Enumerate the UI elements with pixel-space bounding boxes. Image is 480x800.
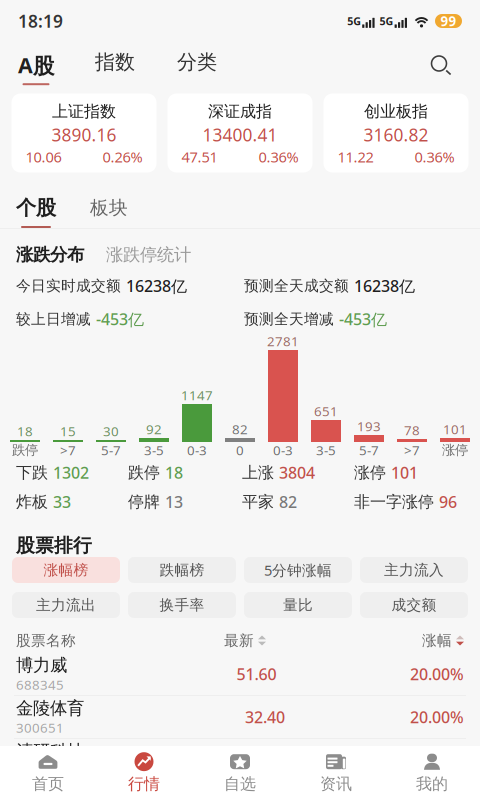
button[interactable]: 我的: [384, 746, 480, 800]
button[interactable]: 深证成指: [167, 93, 312, 172]
staticText: 47.51: [181, 147, 217, 167]
button[interactable]: 行情: [96, 746, 192, 800]
button[interactable]: 量比: [244, 592, 352, 618]
staticText: >7: [404, 441, 420, 459]
button[interactable]: A股: [0, 47, 73, 85]
staticText: 688345: [16, 676, 64, 693]
staticText: 20.00%: [410, 706, 464, 728]
button[interactable]: 主力流入: [360, 557, 468, 583]
staticText: 32.40: [245, 706, 285, 728]
button[interactable]: 跌幅榜: [128, 557, 236, 583]
staticText: 15: [60, 422, 76, 440]
staticText: 深证成指: [208, 101, 272, 121]
staticText: 量比: [283, 596, 313, 614]
staticText: 成交额: [391, 596, 436, 614]
staticText: 5-7: [101, 441, 121, 459]
staticText: -453亿: [96, 308, 144, 330]
staticText: 涨跌分布: [16, 244, 84, 265]
staticText: 300651: [16, 762, 64, 779]
staticText: 0.36%: [258, 147, 298, 167]
staticText: 10.06: [25, 147, 61, 167]
button[interactable]: 博力威: [0, 653, 480, 695]
staticText: 13: [165, 491, 183, 512]
staticText: 0.36%: [414, 147, 454, 167]
button[interactable]: 金陵体育: [0, 696, 480, 738]
staticText: 5G: [380, 14, 394, 28]
staticText: 涨停: [354, 463, 386, 482]
staticText: 0-3: [187, 441, 207, 459]
staticText: 5分钟涨幅: [264, 560, 332, 580]
staticText: 个股: [16, 195, 56, 220]
button[interactable]: 换手率: [128, 592, 236, 618]
button[interactable]: 涨跌分布: [16, 244, 84, 265]
staticText: 行情: [128, 774, 160, 794]
staticText: 78: [404, 421, 420, 439]
staticText: 82: [232, 420, 248, 438]
button[interactable]: 指数: [73, 50, 155, 82]
staticText: 300651: [16, 719, 64, 736]
staticText: 跌停: [12, 442, 38, 458]
staticText: 下跌: [16, 463, 48, 482]
staticText: 股票排行: [16, 534, 92, 557]
staticText: 51.60: [236, 663, 276, 685]
button[interactable]: 成交额: [360, 592, 468, 618]
staticText: 停牌: [128, 492, 160, 512]
staticText: 33: [53, 491, 71, 512]
button[interactable]: 涨幅: [404, 631, 464, 649]
button[interactable]: 清研科技: [0, 739, 480, 781]
button[interactable]: 涨跌停统计: [84, 244, 191, 265]
button[interactable]: 自选: [192, 746, 288, 800]
button[interactable]: 主力流出: [12, 592, 120, 618]
staticText: -453亿: [339, 308, 387, 330]
staticText: 涨幅榜: [43, 561, 88, 579]
staticText: 非一字涨停: [354, 492, 434, 512]
staticText: 193: [357, 417, 381, 435]
staticText: 涨停: [442, 442, 468, 458]
staticText: 主力流出: [36, 596, 96, 614]
staticText: A股: [18, 51, 54, 79]
staticText: 16238亿: [354, 275, 415, 296]
staticText: 博力威: [16, 654, 67, 676]
button[interactable]: 最新: [224, 631, 336, 649]
staticText: 0-3: [273, 441, 293, 459]
button[interactable]: 上证指数: [11, 93, 156, 172]
staticText: 2781: [267, 332, 299, 350]
staticText: 创业板指: [364, 101, 428, 121]
staticText: 3804: [279, 462, 315, 483]
staticText: 651: [314, 402, 338, 420]
staticText: 首页: [32, 774, 64, 794]
staticText: 82: [279, 491, 297, 512]
staticText: >7: [60, 441, 76, 459]
button[interactable]: 分类: [155, 50, 237, 82]
staticText: 101: [443, 420, 467, 438]
staticText: 11.22: [337, 147, 373, 167]
staticText: 上证指数: [52, 101, 116, 121]
staticText: 较上日增减: [16, 310, 91, 328]
staticText: 5G: [347, 14, 361, 28]
staticText: 分类: [177, 50, 217, 74]
button[interactable]: 板块: [74, 196, 144, 227]
button[interactable]: 涨幅榜: [12, 557, 120, 583]
button[interactable]: 资讯: [288, 746, 384, 800]
staticText: 96: [439, 491, 457, 512]
staticText: 今日实时成交额: [16, 277, 121, 295]
staticText: 主力流入: [384, 561, 444, 579]
staticText: 清研科技: [16, 740, 84, 762]
staticText: 3160.82: [363, 123, 428, 146]
staticText: 板块: [90, 196, 128, 219]
button[interactable]: 创业板指: [323, 93, 468, 172]
staticText: 1147: [181, 386, 213, 404]
staticText: 自选: [224, 774, 256, 794]
staticText: 涨幅: [422, 631, 452, 649]
staticText: 18: [165, 462, 183, 483]
staticText: 30: [103, 422, 119, 440]
button[interactable]: Search: [431, 49, 480, 82]
staticText: 20.00%: [410, 749, 464, 771]
button[interactable]: 个股: [0, 195, 74, 228]
button[interactable]: 首页: [0, 746, 96, 800]
staticText: 0.26%: [102, 147, 142, 167]
staticText: 5-7: [359, 441, 379, 459]
staticText: 金陵体育: [16, 697, 84, 719]
staticText: 换手率: [159, 596, 204, 614]
button[interactable]: 5分钟涨幅: [244, 557, 352, 583]
